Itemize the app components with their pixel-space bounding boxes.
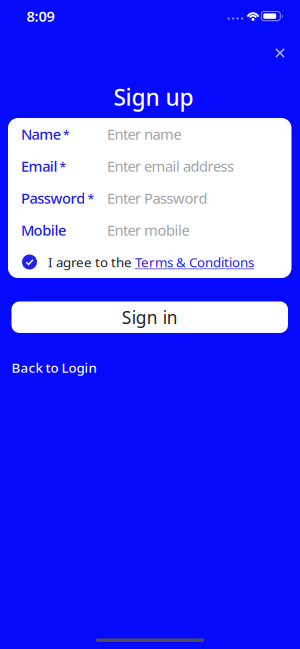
button[interactable]: Back to Login [11,359,96,376]
staticText: Terms & Conditions [135,253,254,271]
staticText: 8:09 [26,6,54,26]
button[interactable]: Sign in [11,301,288,333]
button[interactable]: I agree to the Terms & Conditions [22,254,37,269]
staticText: Enter mobile [107,220,189,240]
staticText: I agree to the [48,253,135,271]
staticText: Email * [21,156,67,176]
button[interactable]: Enter email address [107,156,291,176]
button[interactable]: Enter mobile [107,220,291,240]
staticText: Mobile [21,220,66,240]
staticText: Enter name [107,124,181,144]
staticText: Back to Login [11,359,96,376]
staticText: Sign up [113,82,193,112]
staticText: Enter email address [107,156,234,176]
button[interactable]: Close [273,46,287,60]
staticText: Name * [21,124,70,144]
staticText: Enter Password [107,188,207,208]
button[interactable]: Enter Password [107,188,291,208]
staticText: Sign in [122,306,178,329]
staticText: Password * [21,188,94,208]
button[interactable]: Enter name [107,124,291,144]
button[interactable]: Terms & Conditions [135,253,254,271]
